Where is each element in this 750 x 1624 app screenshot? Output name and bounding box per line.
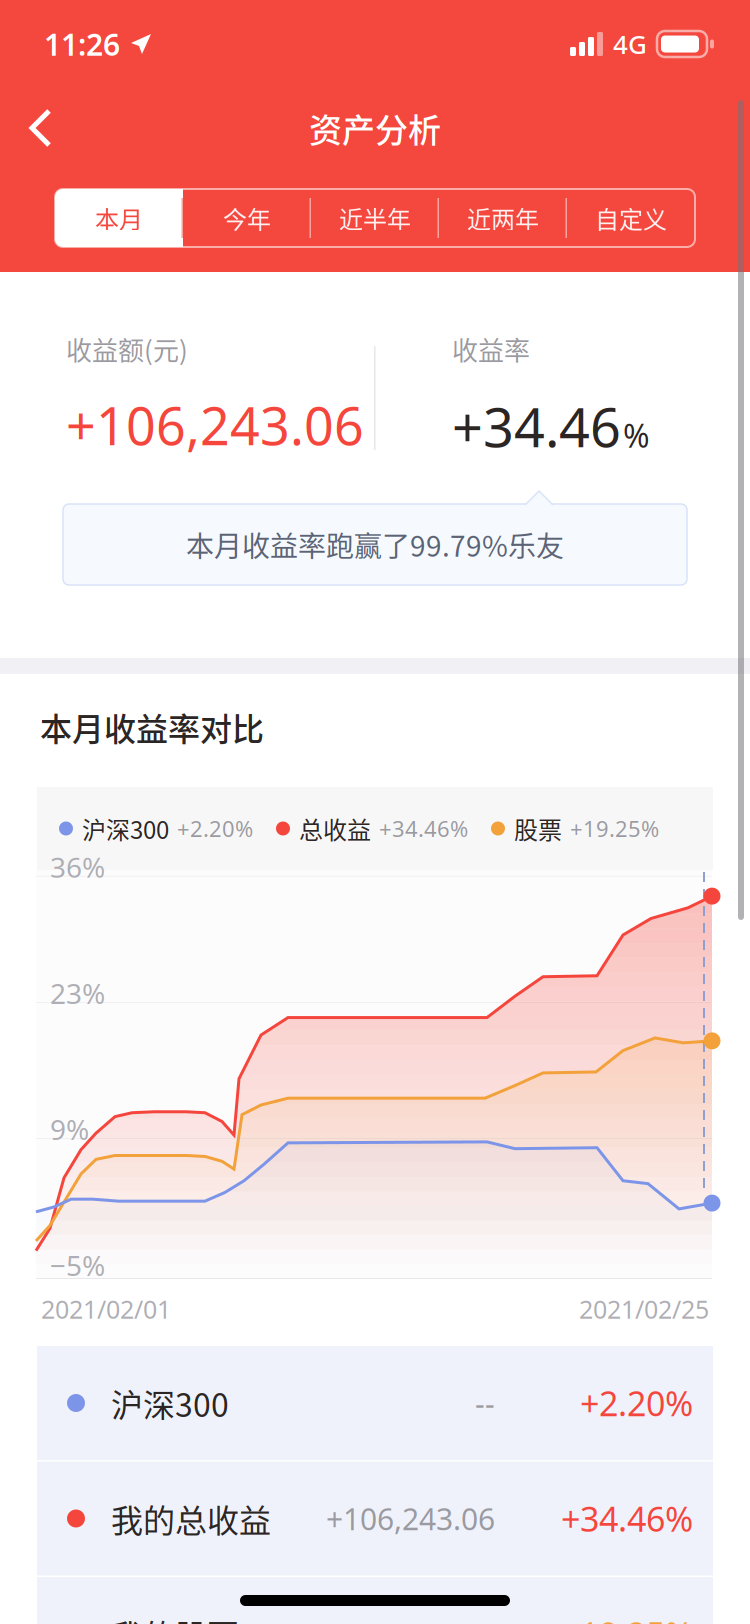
- staticText: −5%: [50, 1246, 105, 1284]
- staticText: 4G: [613, 26, 647, 62]
- staticText: 我的股票: [111, 1611, 239, 1624]
- staticText: 我的总收益: [111, 1495, 271, 1542]
- staticText: 本月收益率跑赢了99.79%乐友: [186, 524, 564, 565]
- staticText: +2.20%: [580, 1380, 693, 1426]
- staticText: 2021/02/25: [579, 1292, 709, 1326]
- staticText: +34.46%: [561, 1495, 693, 1542]
- staticText: +34.46%: [379, 813, 468, 843]
- staticText: 自定义: [595, 201, 667, 235]
- staticText: +19.25%: [570, 813, 659, 843]
- staticText: 近两年: [467, 201, 539, 235]
- staticText: 9%: [50, 1110, 89, 1148]
- button[interactable]: 本月: [55, 189, 183, 247]
- button[interactable]: 沪深300: [37, 1346, 713, 1460]
- staticText: +2.20%: [177, 813, 253, 843]
- staticText: 沪深300: [111, 1380, 229, 1426]
- staticText: +34.46: [452, 390, 621, 463]
- button[interactable]: Back: [0, 88, 83, 168]
- staticText: 本月: [95, 201, 143, 235]
- staticText: +19.25%: [561, 1611, 693, 1624]
- button[interactable]: 自定义: [567, 189, 695, 247]
- staticText: 近半年: [339, 201, 411, 235]
- staticText: %: [623, 414, 650, 457]
- staticText: 总收益: [299, 811, 371, 846]
- staticText: +106,243.06: [66, 390, 364, 460]
- staticText: 沪深300: [82, 811, 169, 846]
- staticText: --: [475, 1383, 495, 1423]
- button[interactable]: 近两年: [439, 189, 567, 247]
- staticText: 本月收益率对比: [40, 704, 264, 750]
- staticText: 股票: [514, 811, 562, 846]
- staticText: 11:26: [44, 24, 120, 64]
- staticText: 资产分析: [309, 104, 441, 152]
- staticText: 收益率: [452, 330, 530, 368]
- button[interactable]: 近半年: [311, 189, 439, 247]
- button[interactable]: 我的股票: [37, 1577, 713, 1624]
- staticText: 收益额(元): [66, 330, 188, 368]
- button[interactable]: 今年: [183, 189, 311, 247]
- staticText: 2021/02/01: [41, 1292, 171, 1326]
- staticText: 23%: [50, 974, 105, 1012]
- staticText: 36%: [50, 848, 105, 886]
- staticText: +106,243.06: [326, 1498, 495, 1539]
- staticText: 今年: [223, 201, 271, 235]
- button[interactable]: 我的总收益: [37, 1461, 713, 1575]
